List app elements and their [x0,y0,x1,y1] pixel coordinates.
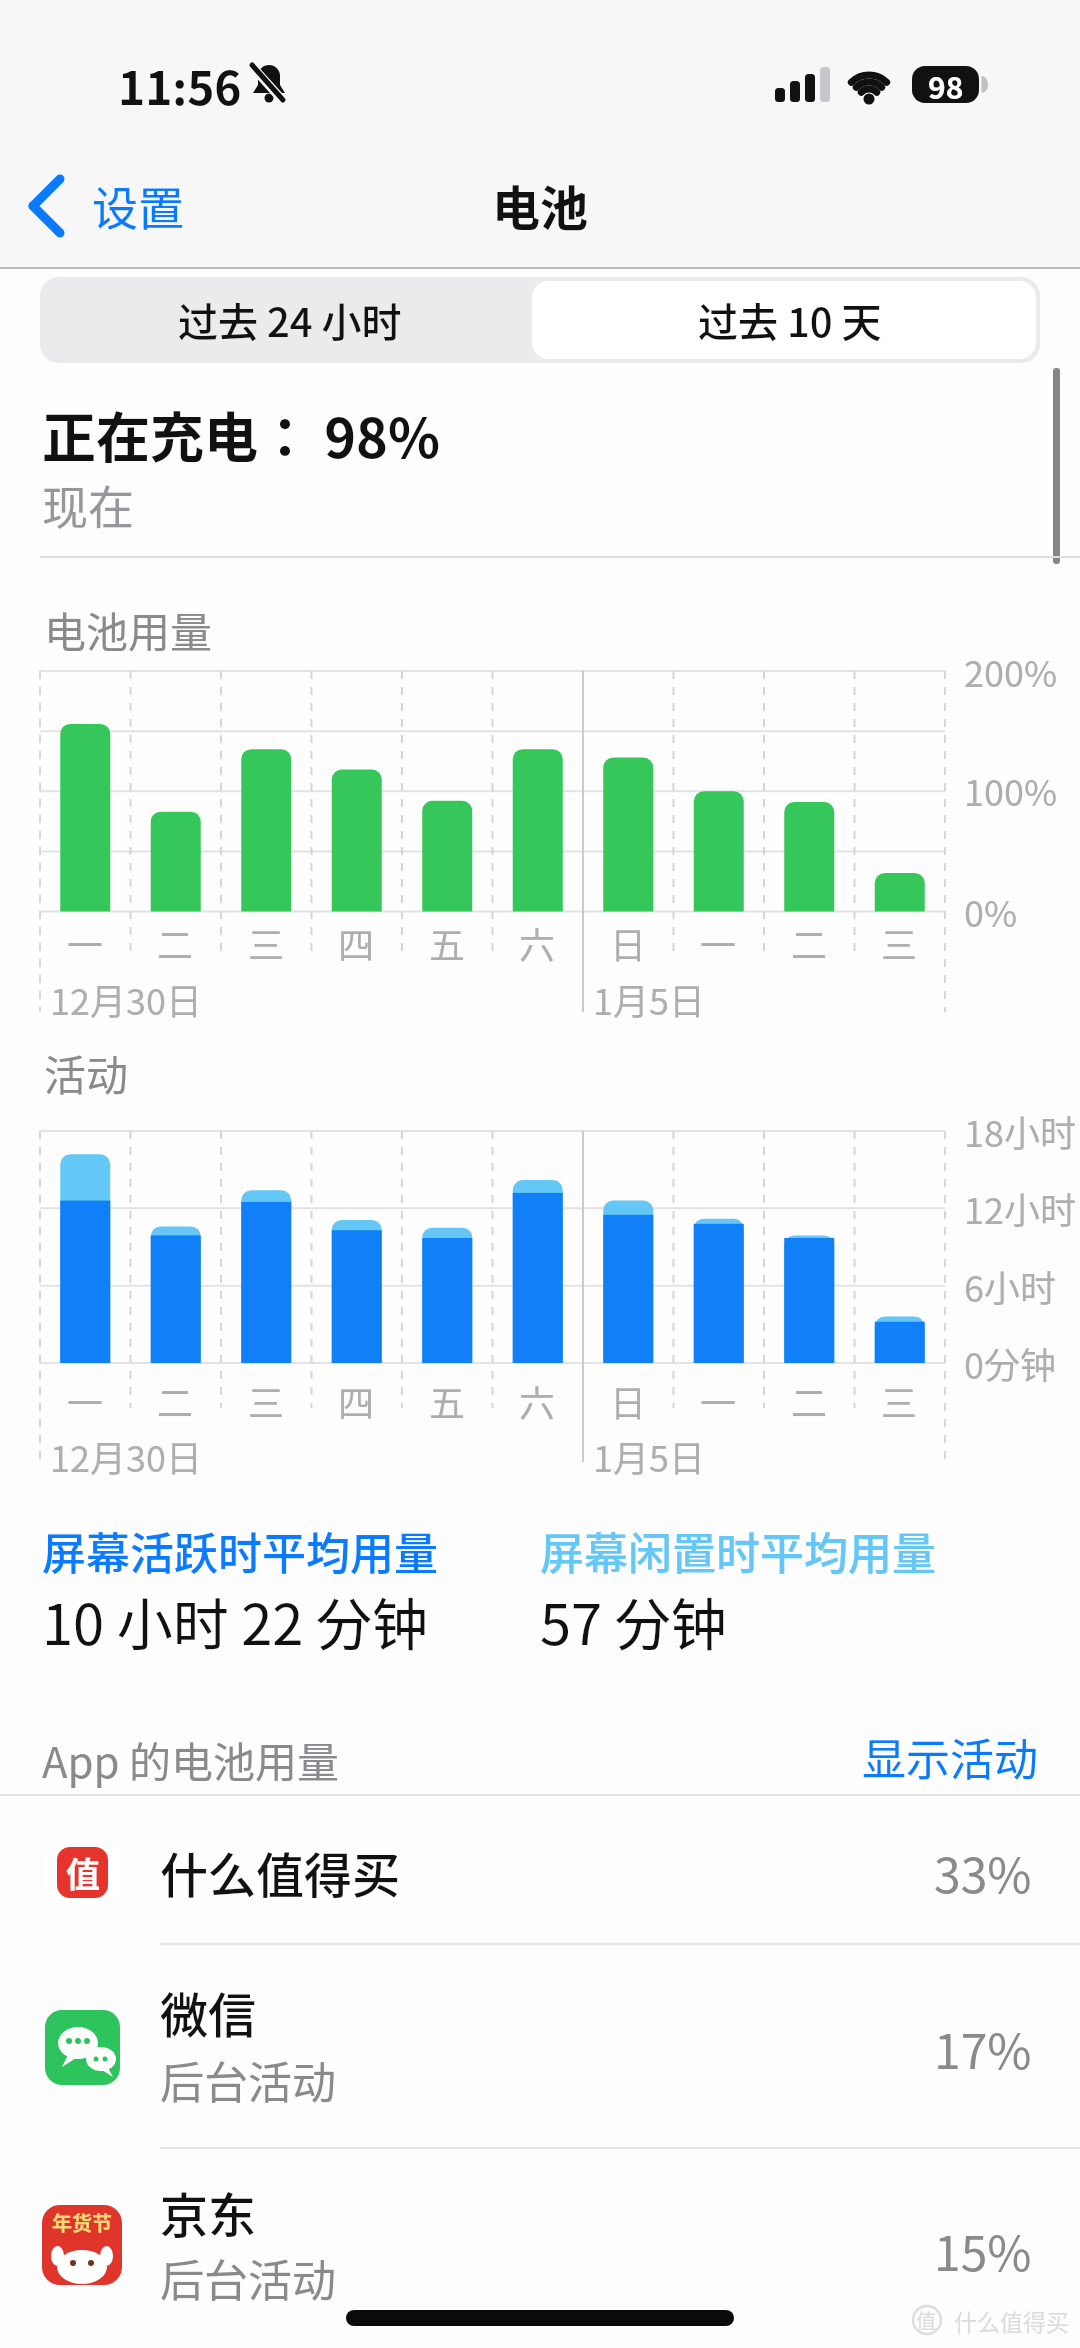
staticText: 五 [429,1375,466,1427]
staticText: 六 [519,1375,556,1427]
staticText: 1月5日 [593,1430,705,1482]
staticText: 设置 [92,172,184,239]
button[interactable] [0,1945,1080,2148]
staticText: 电池用量 [44,599,213,660]
staticText: 200% [964,645,1058,697]
button[interactable] [0,1796,1080,1944]
staticText: 五 [429,917,466,969]
staticText: 三 [881,1375,918,1427]
staticText: 显示活动 [862,1725,1038,1789]
staticText: 现在 [42,471,134,538]
staticText: 二 [791,1375,828,1427]
staticText: 15% [934,2215,1032,2285]
staticText: 四 [338,917,375,969]
staticText: 正在充电： 98% [42,395,440,473]
staticText: 17% [934,2013,1032,2083]
staticText: 57 分钟 [540,1580,727,1661]
staticText: 活动 [44,1042,129,1103]
staticText: 一 [700,1375,737,1427]
staticText: 屏幕闲置时平均用量 [540,1519,936,1583]
button[interactable] [0,2149,1080,2348]
staticText: 一 [67,1375,104,1427]
staticText: 二 [157,917,194,969]
staticText: App 的电池用量 [42,1729,340,1790]
staticText: 0分钟 [964,1337,1056,1389]
staticText: 98 [928,64,964,107]
staticText: 后台活动 [160,2048,336,2112]
button[interactable] [540,277,1040,363]
staticText: 屏幕活跃时平均用量 [42,1519,438,1583]
staticText: 四 [338,1375,375,1427]
staticText: 六 [519,917,556,969]
button[interactable] [40,277,540,363]
staticText: 10 小时 22 分钟 [42,1580,428,1661]
staticText: 二 [791,917,828,969]
staticText: 12月30日 [50,1430,202,1482]
staticText: 微信 [160,1977,257,2047]
button[interactable]: 显示活动 [838,1697,1038,1817]
staticText: 日 [610,917,647,969]
staticText: 年货节 [52,2208,112,2237]
staticText: 0% [964,885,1018,937]
staticText: 京东 [160,2177,257,2247]
staticText: 二 [157,1375,194,1427]
staticText: 过去 10 天 [698,291,882,349]
staticText: 100% [964,764,1058,816]
staticText: 什么值得买 [160,1837,401,1907]
staticText: 11:56 [118,52,242,119]
staticText: 一 [700,917,737,969]
staticText: 一 [67,917,104,969]
staticText: 三 [881,917,918,969]
staticText: 电池 [492,170,589,240]
staticText: 过去 24 小时 [178,291,402,349]
staticText: 什么值得买 [954,2304,1069,2337]
staticText: 6小时 [964,1260,1056,1312]
button[interactable] [10,160,210,250]
staticText: 三 [248,1375,285,1427]
staticText: 值 [916,2306,936,2335]
staticText: 三 [248,917,285,969]
staticText: 33% [934,1837,1032,1907]
staticText: 日 [610,1375,647,1427]
staticText: 后台活动 [160,2246,336,2310]
staticText: 12月30日 [50,973,202,1025]
staticText: 18小时 [964,1105,1076,1157]
staticText: 值 [66,1848,100,1897]
staticText: 1月5日 [593,973,705,1025]
staticText: 12小时 [964,1182,1076,1234]
